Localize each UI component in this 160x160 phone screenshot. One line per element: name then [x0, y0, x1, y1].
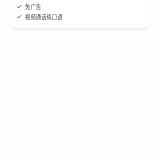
button[interactable]: 视频通话练口语: [17, 11, 150, 22]
staticText: 视频通话练口语: [25, 13, 62, 20]
button[interactable]: 免广告: [17, 1, 150, 11]
staticText: 免广告: [25, 3, 41, 10]
